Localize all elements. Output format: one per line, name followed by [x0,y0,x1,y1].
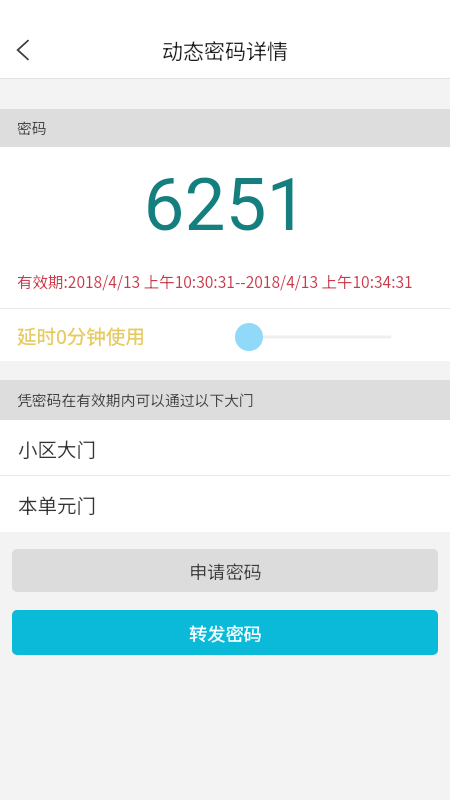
staticText: 密码 [17,117,47,138]
button[interactable]: 小区大门 [0,420,450,475]
button[interactable]: 转发密码 [12,610,438,655]
staticText: 延时0分钟使用 [17,321,145,349]
staticText: 小区大门 [18,434,97,462]
staticText: 凭密码在有效期内可以通过以下大门 [17,389,254,410]
button[interactable]: 本单元门 [0,476,450,532]
staticText: 申请密码 [189,558,262,584]
staticText: 动态密码详情 [162,35,288,65]
staticText: 6251 [143,162,308,248]
button[interactable]: 申请密码 [12,549,438,592]
staticText: 转发密码 [189,620,262,646]
button[interactable]: Delay time slider [226,320,402,354]
staticText: 本单元门 [18,490,97,518]
button[interactable]: Back [1,28,45,72]
staticText: 有效期:2018/4/13 上午10:30:31--2018/4/13 上午10… [17,270,413,292]
